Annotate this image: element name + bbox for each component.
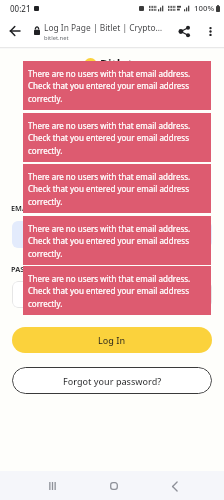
staticText: EMAIL [11, 203, 34, 213]
staticText: PASSWORD [11, 264, 52, 274]
staticText: Bitlet [100, 56, 133, 72]
button[interactable]: Recent apps [39, 473, 65, 499]
staticText: There are no users with that email addre… [28, 120, 191, 157]
staticText: There are no users with that email addre… [28, 171, 191, 208]
button[interactable]: Share [172, 19, 197, 44]
staticText: bitlet.net [44, 34, 69, 42]
staticText: There are no users with that email addre… [28, 68, 191, 105]
staticText: Forgot your password? [63, 375, 162, 387]
button[interactable]: Back [1, 17, 29, 45]
button[interactable]: Log In [12, 327, 212, 353]
staticText: There are no users with that email addre… [28, 273, 191, 310]
button[interactable]: More options [199, 20, 222, 43]
button[interactable]: Back [162, 473, 188, 499]
staticText: There are no users with that email addre… [28, 223, 191, 260]
button[interactable]: Forgot your password? [12, 367, 212, 394]
staticText: 00:21 [10, 3, 31, 14]
staticText: Log In Page | Bitlet | Crypto… [44, 22, 163, 33]
button[interactable]: Home [101, 473, 127, 499]
button[interactable] [12, 281, 212, 308]
staticText: 100% [194, 3, 215, 14]
button[interactable] [12, 221, 212, 248]
staticText: Log In [98, 334, 126, 346]
